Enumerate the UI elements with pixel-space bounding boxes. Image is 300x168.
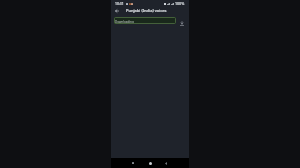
button[interactable]: Home <box>146 159 154 167</box>
staticText: Punjabi (India) voices <box>126 8 167 13</box>
button[interactable]: Recent apps <box>129 159 137 167</box>
button[interactable]: Downloading <box>114 17 176 24</box>
button[interactable]: Back <box>162 159 170 167</box>
staticText: 10:31 <box>115 1 124 6</box>
staticText: 100% <box>175 1 185 6</box>
button[interactable]: Download <box>177 18 187 28</box>
staticText: Downloading <box>115 20 134 24</box>
button[interactable]: Navigate up <box>112 6 121 15</box>
